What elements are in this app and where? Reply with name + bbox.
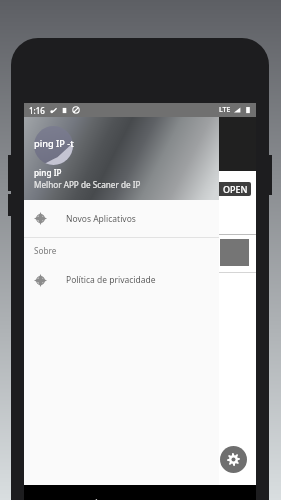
staticText: 1:16 <box>29 105 45 116</box>
button[interactable]: OPEN <box>206 182 251 196</box>
button[interactable]: Novos Aplicativos <box>24 200 219 237</box>
button[interactable]: Settings <box>220 446 247 473</box>
staticText: Sobre <box>34 245 57 256</box>
staticText: OPEN <box>223 183 248 195</box>
staticText: ping IP <box>34 167 62 178</box>
button[interactable]: Política de privacidade <box>24 262 219 298</box>
staticText: ping IP -t <box>34 137 94 150</box>
staticText: Novos Aplicativos <box>66 213 136 225</box>
staticText: Melhor APP de Scaner de IP <box>34 179 141 190</box>
staticText: Política de privacidade <box>66 274 156 286</box>
staticText: LTE <box>219 105 231 115</box>
